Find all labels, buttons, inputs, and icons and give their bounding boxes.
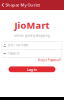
button[interactable]: Login [8,66,55,72]
staticText: online grocery shopping [14,34,50,37]
staticText: Password [8,52,20,55]
button[interactable]: Enter Username [2,41,62,49]
button[interactable]: Password [2,50,62,57]
staticText: Forgot Password? [38,58,61,62]
button[interactable]: Back [0,0,5,10]
staticText: JioMart [14,19,49,31]
staticText: Enter Username [8,44,29,47]
staticText: Shop at My Outlet [5,2,40,8]
staticText: Login [26,67,37,72]
button[interactable]: Forgot Password? [37,58,61,62]
